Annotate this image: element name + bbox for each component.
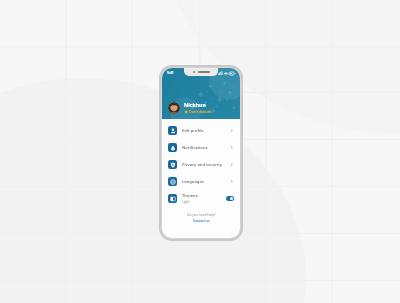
staticText: Edit profile (182, 128, 204, 134)
staticText: Contact us (193, 218, 210, 222)
other: Open Privacy and security (229, 162, 234, 167)
button[interactable]: Edit profile (162, 122, 240, 139)
staticText: Themes (182, 193, 198, 199)
staticText: Nickhun (184, 101, 206, 108)
button[interactable]: Languages (162, 173, 240, 190)
staticText: Languages (182, 179, 204, 185)
button[interactable]: Profile photo (168, 101, 234, 114)
staticText: Privacy and security (182, 162, 222, 168)
button[interactable]: Privacy and security (162, 156, 240, 173)
staticText: Do you need help? (187, 212, 216, 216)
other: Open Languages (229, 179, 234, 184)
other: Open Edit profile (229, 128, 234, 133)
button[interactable]: Notifications (162, 139, 240, 156)
staticText: Light (182, 200, 190, 204)
staticText: 9:41 (167, 70, 174, 75)
button[interactable]: Profile photo (168, 102, 180, 114)
staticText: Don't disturb (189, 109, 212, 114)
button[interactable]: Contact us (193, 218, 210, 222)
button[interactable]: Themes (162, 190, 240, 207)
other: Open Notifications (229, 145, 234, 150)
staticText: Notifications (182, 145, 208, 151)
button[interactable]: Toggle theme (226, 196, 234, 201)
